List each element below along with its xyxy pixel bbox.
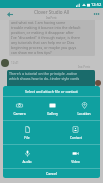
staticText: Contact — [70, 135, 82, 139]
staticText: 12:52 — [91, 2, 102, 7]
staticText: Location — [77, 111, 91, 115]
staticText: Ina Peric — [46, 16, 57, 20]
staticText: Cancel — [46, 171, 57, 176]
button[interactable]: Gallery — [36, 97, 68, 120]
button[interactable]: More options — [90, 8, 103, 20]
button[interactable]: Contact — [51, 121, 100, 144]
staticText: Gallery — [47, 111, 58, 115]
staticText: Audio — [22, 159, 32, 163]
button[interactable]: Cancel — [3, 169, 100, 178]
button[interactable]: Back — [3, 8, 16, 20]
button[interactable]: Video — [51, 145, 100, 168]
staticText: Ina Peric — [78, 65, 91, 69]
staticText: 12:41 — [11, 61, 19, 65]
staticText: Video — [71, 159, 80, 163]
staticText: There's a tutorial on the principle -nat… — [9, 71, 80, 81]
staticText: Camera — [13, 111, 26, 115]
button[interactable]: File — [3, 121, 51, 144]
staticText: File — [24, 135, 30, 139]
staticText: Clover Studio All — [34, 9, 70, 15]
button[interactable]: Location — [68, 97, 100, 120]
staticText: and what not. I am having some trouble m… — [11, 20, 81, 55]
button[interactable]: Camera — [3, 97, 36, 120]
staticText: Select and attach file or contact — [25, 89, 78, 94]
button[interactable]: Audio — [3, 145, 51, 168]
